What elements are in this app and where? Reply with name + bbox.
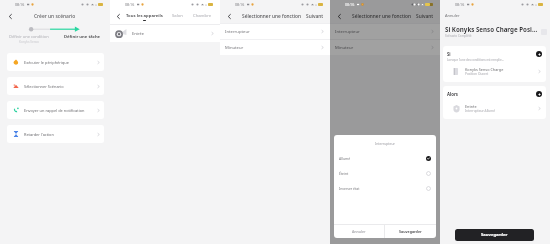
staticText: Si Konyks Senso Charge Posit…: [445, 25, 539, 33]
staticText: Konyks Senso Charge: [465, 67, 504, 72]
staticText: Minuteur: [335, 45, 354, 51]
staticText: 08:16: [15, 2, 25, 7]
button[interactable]: Allumé: [334, 151, 436, 166]
button[interactable]: Salon: [172, 13, 183, 21]
button[interactable]: Suivant: [416, 13, 434, 20]
staticText: Sauvegarder: [481, 232, 508, 238]
button[interactable]: Entrée: [110, 25, 220, 42]
staticText: Konyks Senso: [19, 40, 39, 44]
button[interactable]: Sauvegarder: [455, 229, 534, 241]
staticText: Alors: [447, 91, 459, 97]
button[interactable]: Minuteur: [330, 40, 440, 55]
button[interactable]: Add: [536, 91, 542, 97]
button[interactable]: Chambre: [193, 13, 212, 21]
button[interactable]: Retarder l'action: [7, 125, 104, 143]
button[interactable]: Éteint: [334, 166, 436, 181]
staticText: Définir une condition: [9, 34, 49, 39]
button[interactable]: Back: [335, 12, 344, 21]
button[interactable]: Minuteur: [220, 40, 330, 55]
staticText: 08:16: [345, 2, 355, 7]
staticText: Tous les appareils: [126, 13, 163, 19]
staticText: Envoyer un rappel de notification: [24, 108, 94, 113]
button[interactable]: Konyks Senso Charge: [447, 67, 542, 76]
button[interactable]: Inverser état: [334, 181, 436, 196]
staticText: Interrupteur: [335, 29, 360, 35]
button[interactable]: Interrupteur: [330, 24, 440, 39]
staticText: Allumé: [339, 156, 351, 161]
staticText: Créer un scénario: [34, 13, 76, 20]
button[interactable]: Envoyer un rappel de notification: [7, 101, 104, 119]
staticText: Si: [447, 51, 451, 57]
staticText: Minuteur: [225, 45, 244, 51]
staticText: 08:16: [125, 2, 135, 7]
button[interactable]: Add: [536, 51, 542, 57]
button[interactable]: Back: [114, 12, 123, 21]
staticText: Entrée: [132, 31, 144, 36]
button[interactable]: Tous les appareils: [126, 13, 163, 21]
staticText: 08:16: [345, 2, 355, 7]
button[interactable]: Annuler: [334, 225, 384, 238]
button[interactable]: Entrée: [447, 104, 542, 113]
staticText: Éteint: [339, 171, 349, 176]
staticText: Position Ouvert: [465, 72, 489, 76]
staticText: Interrupteur Allumé: [465, 109, 496, 113]
button[interactable]: Annuler: [445, 13, 460, 18]
button[interactable]: Interrupteur: [220, 24, 330, 39]
button[interactable]: Exécuter le périphérique: [7, 53, 104, 71]
staticText: 08:16: [235, 2, 245, 7]
staticText: Entrée: [465, 104, 477, 109]
staticText: Sélectionner une fonction: [352, 13, 411, 20]
staticText: Exécuter le périphérique: [24, 60, 94, 65]
button[interactable]: Suivant: [306, 13, 324, 20]
staticText: Annuler: [352, 229, 366, 234]
staticText: Sélectionner Scénario: [24, 84, 94, 89]
button[interactable]: Back: [225, 12, 234, 21]
staticText: Interrupteur: [225, 29, 250, 35]
staticText: Lorsque l'une des conditions est remplie…: [447, 58, 505, 62]
staticText: Inverser état: [339, 186, 360, 191]
button[interactable]: Back: [6, 12, 15, 21]
button[interactable]: Sélectionner Scénario: [7, 77, 104, 95]
staticText: Scénario Complété: [445, 34, 472, 38]
staticText: Sélectionner une fonction: [242, 13, 301, 20]
button[interactable]: Sauvegarder: [385, 225, 436, 238]
staticText: Définir une tâche: [64, 34, 101, 40]
staticText: Retarder l'action: [24, 132, 94, 137]
staticText: Interrupteur: [334, 141, 436, 146]
staticText: 08:16: [455, 2, 465, 7]
staticText: Sauvegarder: [399, 229, 422, 234]
